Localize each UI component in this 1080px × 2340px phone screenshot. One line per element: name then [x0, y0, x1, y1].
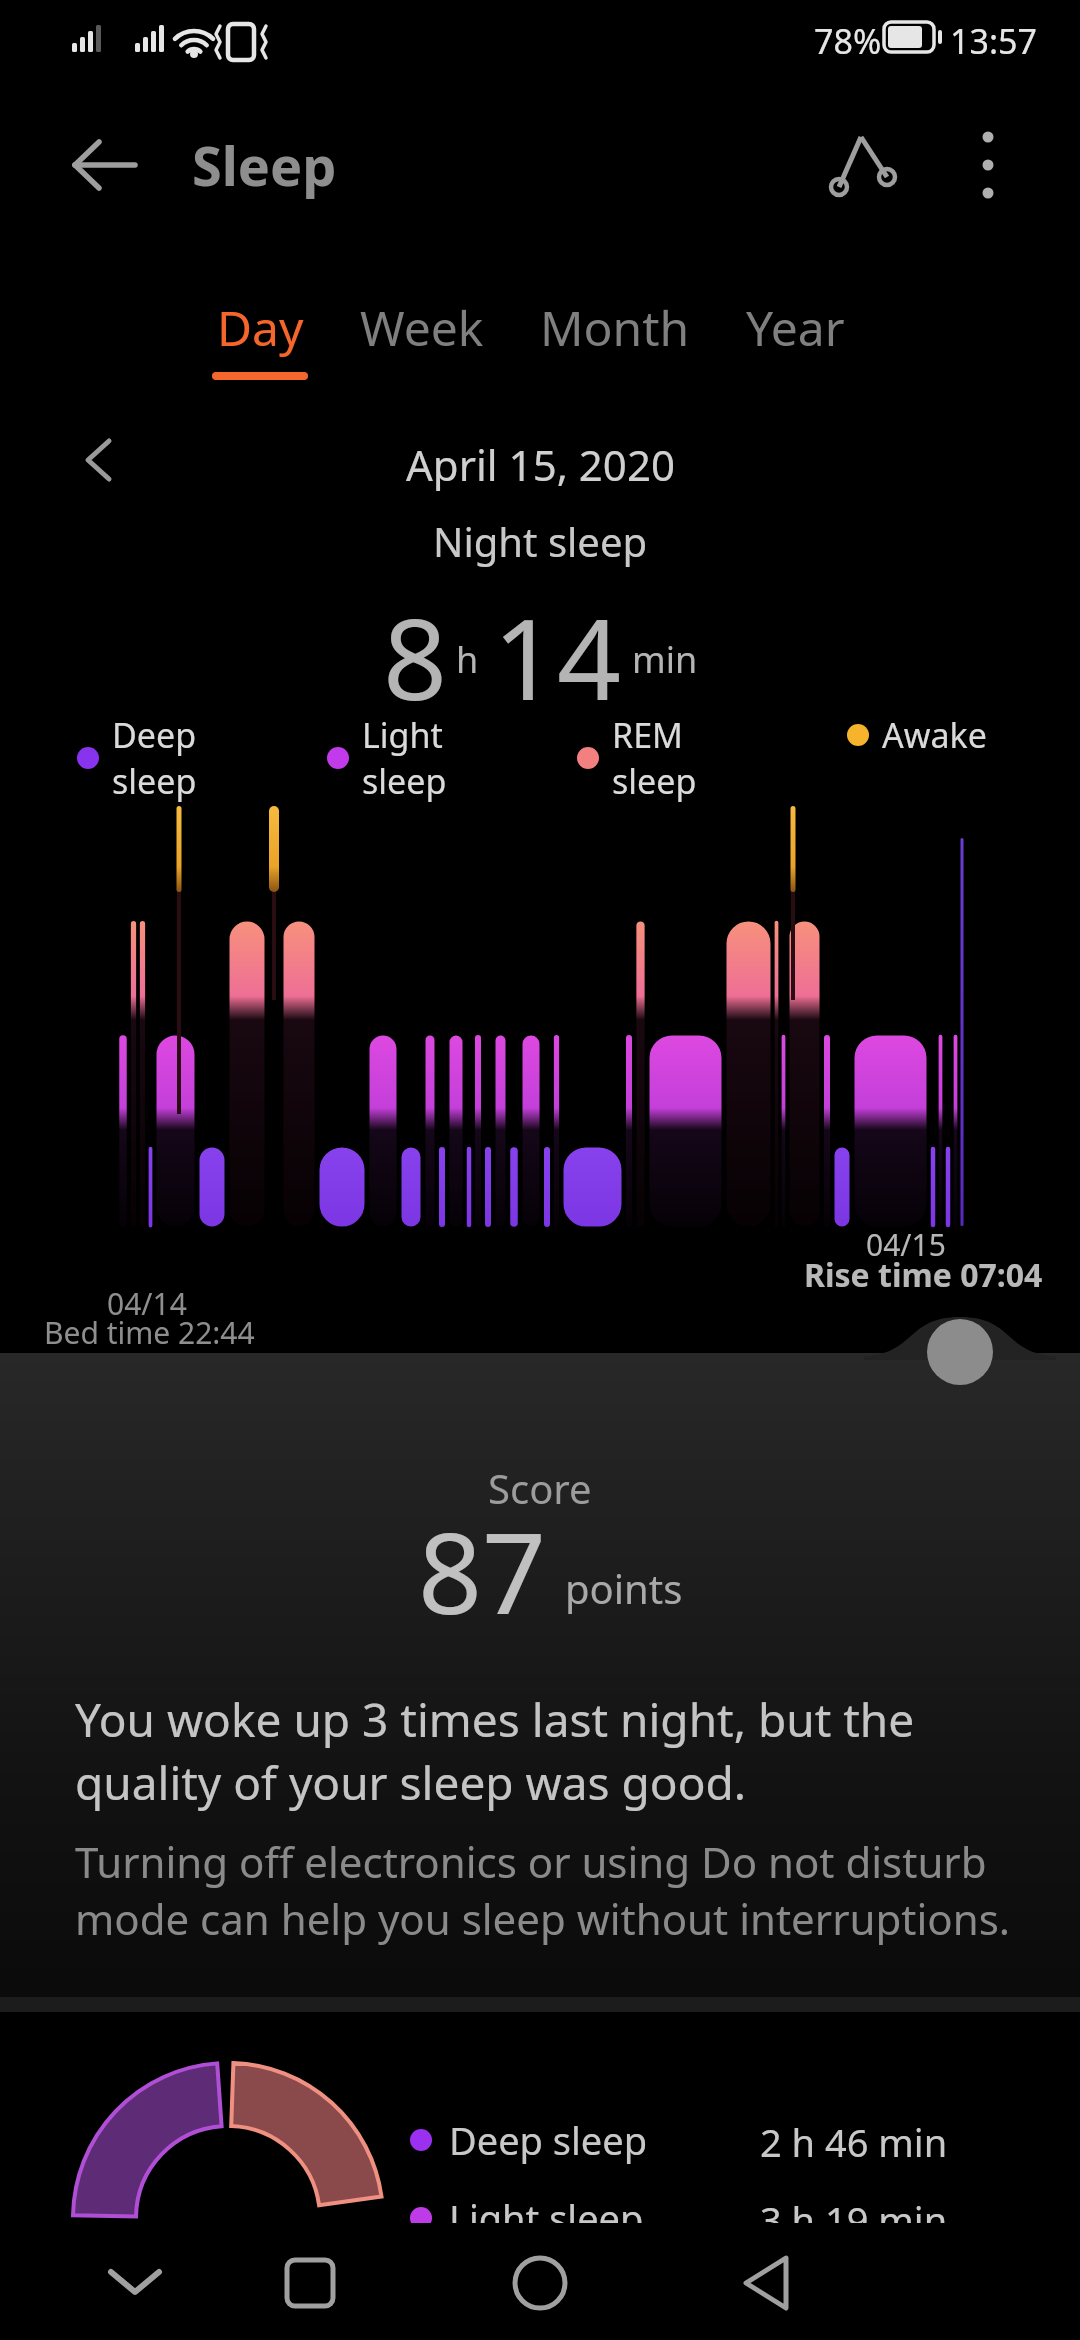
staticText: Deep sleep [449, 2114, 648, 2166]
button[interactable] [60, 100, 150, 230]
staticText: quality of your sleep was good. [75, 1751, 747, 1814]
button[interactable] [490, 2233, 590, 2333]
staticText: min [632, 635, 698, 684]
button[interactable]: Week [360, 295, 484, 360]
staticText: REM [612, 712, 683, 758]
button[interactable] [70, 430, 126, 490]
button[interactable] [716, 2233, 816, 2333]
button[interactable] [85, 2233, 185, 2333]
staticText: 87 [418, 1494, 547, 1639]
button[interactable]: Month [540, 295, 690, 360]
staticText: 2 h 46 min [760, 2116, 948, 2168]
staticText: 04/14 [107, 1283, 187, 1324]
button[interactable] [260, 2233, 360, 2333]
staticText: Score [488, 1461, 592, 1515]
staticText: Awake [882, 712, 987, 758]
staticText: Light sleep [449, 2192, 644, 2244]
staticText: 14 [493, 580, 622, 710]
staticText: Night sleep [433, 514, 648, 568]
staticText: 78% [814, 18, 882, 64]
button[interactable] [810, 110, 915, 220]
staticText: 13:57 [950, 18, 1037, 64]
staticText: 8 [383, 580, 448, 710]
button[interactable] [940, 110, 1035, 220]
staticText: sleep [362, 758, 447, 804]
staticText: Sleep [192, 128, 337, 202]
staticText: mode can help you sleep without interrup… [75, 1890, 1011, 1947]
staticText: points [565, 1561, 683, 1615]
staticText: April 15, 2020 [406, 436, 675, 493]
staticText: 3 h 19 min [760, 2194, 948, 2246]
staticText: sleep [612, 758, 697, 804]
staticText: Light [362, 712, 443, 758]
button[interactable]: Day [212, 295, 308, 380]
staticText: Rise time 07:04 [804, 1253, 1043, 1297]
button[interactable]: Year [746, 295, 845, 360]
staticText: sleep [112, 758, 197, 804]
staticText: You woke up 3 times last night, but the [75, 1688, 915, 1751]
staticText: Turning off electronics or using Do not … [75, 1833, 987, 1890]
staticText: Day [217, 295, 304, 360]
staticText: h [456, 635, 479, 684]
staticText: Bed time 22:44 [44, 1312, 255, 1353]
staticText: 04/15 [866, 1224, 946, 1265]
staticText: Deep [112, 712, 197, 758]
